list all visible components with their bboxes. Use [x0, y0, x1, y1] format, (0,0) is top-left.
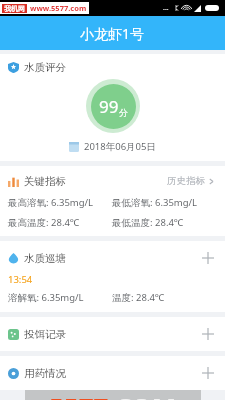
staticText: 小龙虾1号 — [80, 24, 145, 43]
staticText: 最低溶氧: 6.35mg/L — [112, 196, 217, 209]
button[interactable]: 历史指标 — [165, 173, 217, 189]
staticText: 历史指标 — [167, 175, 205, 187]
staticText: 温度: 28.4℃ — [112, 291, 217, 304]
button[interactable]: 添加用药情况 — [197, 362, 219, 384]
staticText: 5577 — [49, 390, 109, 400]
staticText: 用药情况 — [24, 367, 66, 380]
button[interactable]: 用药情况 — [0, 356, 225, 390]
staticText: ... — [163, 3, 169, 13]
staticText: 分 — [119, 107, 128, 118]
staticText: 水质巡塘 — [24, 252, 66, 265]
staticText: 我机网 — [4, 4, 25, 13]
button[interactable]: 添加投饵记录 — [197, 323, 219, 345]
staticText: 最低温度: 28.4℃ — [112, 216, 217, 229]
staticText: 13:54 — [8, 273, 33, 286]
staticText: 2018年06月05日 — [84, 140, 156, 153]
staticText: 水质评分 — [24, 61, 66, 74]
staticText: 溶解氧: 6.35mg/L — [8, 291, 112, 304]
button[interactable]: 添加水质巡塘记录 — [197, 247, 219, 269]
staticText: 最高温度: 28.4℃ — [8, 216, 112, 229]
staticText: 关键指标 — [24, 175, 66, 188]
staticText: www.5577.com — [30, 3, 87, 13]
staticText: 最高溶氧: 6.35mg/L — [8, 196, 112, 209]
staticText: .COM — [109, 390, 177, 400]
staticText: 99 — [99, 95, 119, 118]
button[interactable]: 投饵记录 — [0, 317, 225, 351]
staticText: 投饵记录 — [24, 328, 66, 341]
